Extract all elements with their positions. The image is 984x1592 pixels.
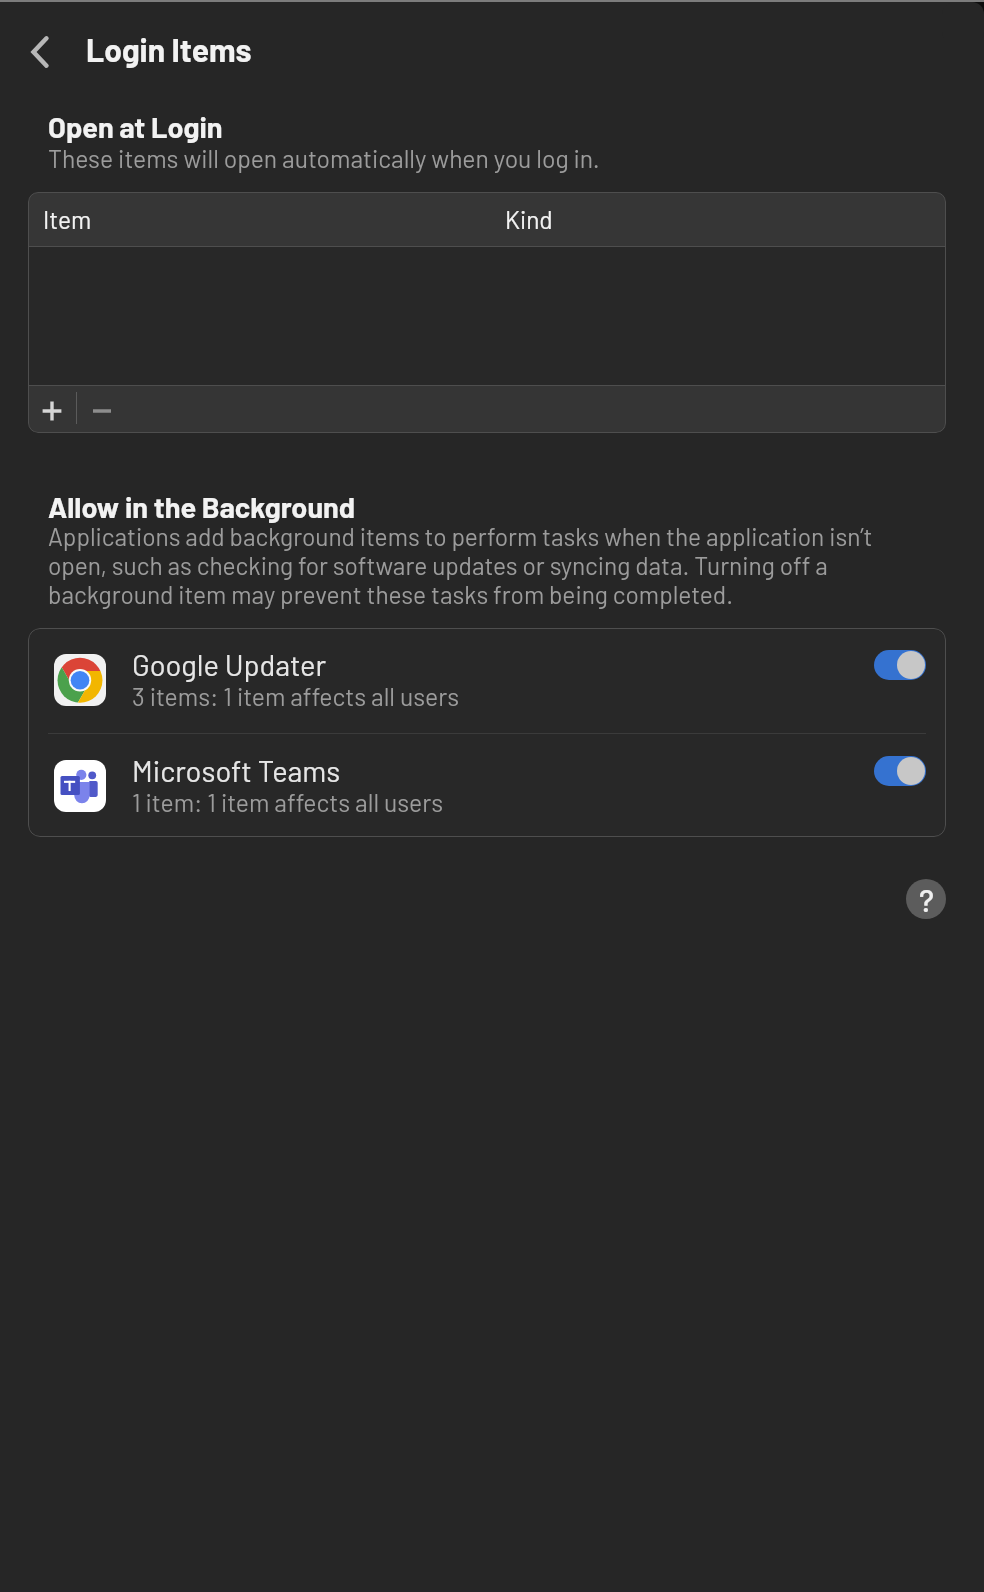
staticText: Google Updater	[132, 647, 327, 681]
button[interactable]: Remove login item	[79, 388, 125, 433]
button[interactable]: Add login item	[29, 388, 75, 433]
staticText: ?	[919, 881, 934, 918]
staticText: Item	[43, 205, 92, 234]
staticText: Applications add background items to per…	[48, 522, 898, 609]
button[interactable]: Toggle Google Updater	[874, 650, 926, 680]
button[interactable]: Google Updater	[28, 628, 946, 732]
button[interactable]: Toggle Microsoft Teams	[874, 756, 926, 786]
button[interactable]: Microsoft Teams	[28, 734, 946, 837]
staticText: Kind	[505, 205, 553, 234]
staticText: Open at Login	[48, 110, 223, 144]
staticText: 1 item: 1 item affects all users	[132, 788, 444, 817]
staticText: Login Items	[86, 31, 252, 69]
staticText: These items will open automatically when…	[48, 144, 600, 173]
staticText: Allow in the Background	[48, 490, 356, 524]
button[interactable]: Help	[906, 879, 946, 919]
staticText: Microsoft Teams	[132, 753, 341, 787]
staticText: 3 items: 1 item affects all users	[132, 682, 460, 711]
button[interactable]: Back	[16, 28, 64, 76]
